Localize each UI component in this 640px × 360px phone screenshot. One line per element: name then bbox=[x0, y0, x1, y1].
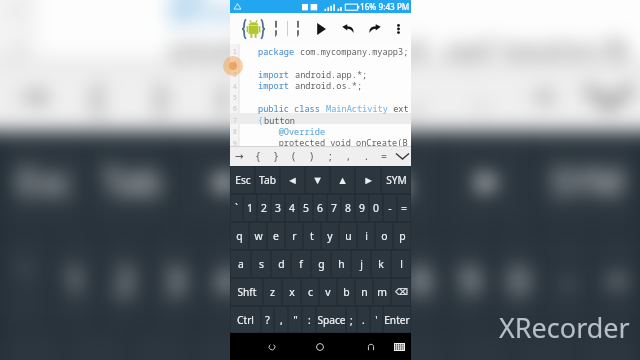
button[interactable]: . bbox=[449, 60, 513, 131]
button[interactable]: o bbox=[375, 222, 393, 250]
button[interactable]: r bbox=[193, 329, 257, 360]
button[interactable]: 0 bbox=[369, 194, 383, 222]
button[interactable]: More symbols bbox=[393, 146, 411, 166]
button[interactable]: z bbox=[263, 278, 282, 306]
button[interactable]: 3 bbox=[271, 194, 285, 222]
button[interactable]: ▶ bbox=[355, 166, 381, 194]
button[interactable]: Insert semicolon bbox=[271, 13, 281, 44]
button[interactable]: Run bbox=[310, 13, 332, 44]
button[interactable]: 7 bbox=[347, 230, 396, 329]
button[interactable]: ▼ bbox=[265, 131, 354, 230]
button[interactable]: - bbox=[383, 194, 397, 222]
button[interactable]: Space bbox=[316, 306, 346, 333]
button[interactable]: Tab bbox=[255, 166, 280, 194]
button[interactable]: u bbox=[339, 222, 357, 250]
button[interactable]: } bbox=[129, 60, 193, 131]
button[interactable]: 9 bbox=[445, 230, 494, 329]
button[interactable]: s bbox=[251, 250, 271, 278]
button[interactable]: Enter bbox=[383, 306, 411, 333]
button[interactable]: v bbox=[319, 278, 337, 306]
button[interactable]: ) bbox=[303, 146, 321, 166]
button[interactable]: q bbox=[230, 222, 249, 250]
button[interactable]: Insert brace bbox=[293, 13, 303, 44]
button[interactable]: m bbox=[373, 278, 391, 306]
button[interactable]: Tab bbox=[88, 131, 175, 230]
button[interactable]: j bbox=[351, 250, 371, 278]
button[interactable]: 6 bbox=[313, 194, 327, 222]
button[interactable]: ` bbox=[230, 194, 243, 222]
button[interactable]: 8 bbox=[396, 230, 445, 329]
button[interactable]: → bbox=[230, 146, 249, 166]
button[interactable]: Recent apps bbox=[357, 333, 385, 360]
button[interactable]: Esc bbox=[230, 166, 255, 194]
button[interactable]: Redo bbox=[362, 13, 387, 44]
button[interactable]: ▲ bbox=[354, 131, 443, 230]
button[interactable]: t bbox=[303, 222, 321, 250]
button[interactable]: 4 bbox=[200, 230, 249, 329]
button[interactable]: SYM bbox=[534, 131, 640, 230]
button[interactable]: y bbox=[321, 222, 339, 250]
button[interactable]: Back bbox=[258, 333, 286, 360]
button[interactable]: 0 bbox=[494, 230, 543, 329]
button[interactable]: 1 bbox=[243, 194, 257, 222]
button[interactable]: ? bbox=[261, 306, 274, 333]
button[interactable]: = bbox=[513, 60, 577, 131]
button[interactable]: 5 bbox=[299, 194, 313, 222]
button[interactable]: ▶ bbox=[443, 131, 534, 230]
button[interactable]: 8 bbox=[341, 194, 355, 222]
button[interactable]: More symbols bbox=[577, 60, 640, 131]
button[interactable]: = bbox=[375, 146, 393, 166]
button[interactable]: 6 bbox=[298, 230, 347, 329]
button[interactable]: 7 bbox=[327, 194, 341, 222]
button[interactable]: u bbox=[385, 329, 449, 360]
button[interactable]: Esc bbox=[0, 131, 88, 230]
button[interactable]: Home bbox=[306, 333, 334, 360]
button[interactable]: : bbox=[302, 306, 316, 333]
button[interactable]: ( bbox=[285, 146, 303, 166]
button[interactable]: 5 bbox=[249, 230, 298, 329]
button[interactable]: ▼ bbox=[305, 166, 330, 194]
button[interactable]: a bbox=[230, 250, 251, 278]
button[interactable]: w bbox=[249, 222, 267, 250]
button[interactable]: → bbox=[0, 60, 65, 131]
button[interactable]: ◀ bbox=[175, 131, 265, 230]
button[interactable]: c bbox=[301, 278, 319, 306]
button[interactable]: , bbox=[339, 146, 357, 166]
button[interactable]: ; bbox=[321, 60, 385, 131]
button[interactable]: SYM bbox=[381, 166, 411, 194]
button[interactable]: ⌫ bbox=[391, 278, 411, 306]
button[interactable]: g bbox=[311, 250, 331, 278]
button[interactable]: " bbox=[288, 306, 302, 333]
button[interactable]: Switch keyboard bbox=[385, 333, 413, 360]
button[interactable]: h bbox=[331, 250, 351, 278]
button[interactable]: o bbox=[513, 329, 577, 360]
button[interactable]: Ctrl bbox=[230, 306, 261, 333]
button[interactable]: { bbox=[249, 146, 267, 166]
button[interactable]: ◀ bbox=[280, 166, 305, 194]
button[interactable]: 2 bbox=[100, 230, 150, 329]
button[interactable]: ( bbox=[193, 60, 257, 131]
button[interactable]: i bbox=[449, 329, 513, 360]
button[interactable]: e bbox=[267, 222, 285, 250]
button[interactable]: l bbox=[391, 250, 411, 278]
button[interactable]: = bbox=[592, 230, 640, 329]
button[interactable]: More options bbox=[390, 13, 406, 44]
button[interactable]: p bbox=[393, 222, 411, 250]
button[interactable]: ) bbox=[257, 60, 321, 131]
button[interactable]: - bbox=[543, 230, 592, 329]
button[interactable]: = bbox=[397, 194, 411, 222]
button[interactable]: f bbox=[291, 250, 311, 278]
button[interactable]: ; bbox=[321, 146, 339, 166]
button[interactable]: i bbox=[357, 222, 375, 250]
button[interactable]: AIDE project bbox=[239, 13, 267, 44]
button[interactable]: 3 bbox=[150, 230, 200, 329]
button[interactable]: 9 bbox=[355, 194, 369, 222]
button[interactable]: } bbox=[267, 146, 285, 166]
button[interactable]: 4 bbox=[285, 194, 299, 222]
button[interactable]: ; bbox=[346, 306, 357, 333]
button[interactable]: 2 bbox=[257, 194, 271, 222]
button[interactable]: , bbox=[385, 60, 449, 131]
